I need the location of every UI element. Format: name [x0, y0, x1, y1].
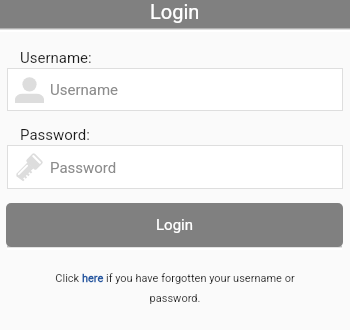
staticText: Username	[50, 81, 119, 99]
staticText: Username:	[20, 49, 92, 67]
staticText: Login	[156, 216, 193, 234]
staticText: Click here if you have forgotten your us…	[48, 272, 302, 305]
button[interactable]: Username	[7, 68, 343, 111]
staticText: Password:	[20, 126, 90, 144]
button[interactable]: Login	[6, 203, 343, 247]
button[interactable]: Password	[7, 145, 343, 189]
staticText: Password	[50, 159, 117, 177]
staticText: Login	[150, 0, 200, 23]
